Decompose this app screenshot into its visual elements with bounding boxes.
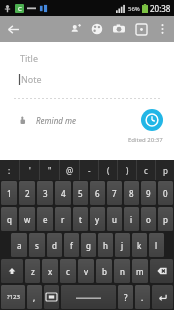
staticText: 9 xyxy=(146,188,151,199)
button[interactable]: 7 xyxy=(107,181,122,205)
button[interactable]: 6 xyxy=(90,181,105,205)
button[interactable]: " xyxy=(40,160,59,180)
staticText: C xyxy=(18,5,22,13)
button[interactable]: s xyxy=(29,233,45,257)
staticText: ( xyxy=(107,165,110,176)
button[interactable]: 0 xyxy=(158,181,173,205)
staticText: f xyxy=(70,240,73,251)
staticText: . xyxy=(141,292,144,303)
staticText: d xyxy=(52,240,57,251)
button[interactable]: w xyxy=(19,207,35,231)
staticText: 5 xyxy=(78,188,83,199)
staticText: @ xyxy=(66,165,74,176)
button[interactable]: q xyxy=(1,207,17,231)
button[interactable]: j xyxy=(115,233,130,257)
button[interactable]: 1 xyxy=(1,181,17,205)
button[interactable]: 8 xyxy=(124,181,139,205)
button[interactable]: - xyxy=(80,160,98,180)
button[interactable]: ?123 xyxy=(1,285,25,309)
button[interactable]: @ xyxy=(60,160,79,180)
button[interactable]: Set reminder time xyxy=(141,109,163,131)
button[interactable]: o xyxy=(141,207,156,231)
button[interactable]: Backspace xyxy=(150,259,173,283)
button[interactable]: ' xyxy=(20,160,39,180)
button[interactable]: b xyxy=(96,259,112,283)
button[interactable]: f xyxy=(64,233,79,257)
button[interactable]: t xyxy=(73,207,88,231)
staticText: b xyxy=(102,266,107,277)
staticText: 56% xyxy=(128,5,140,13)
button[interactable]: Color palette xyxy=(86,18,108,40)
staticText: a xyxy=(17,240,22,251)
button[interactable]: Title xyxy=(20,52,174,64)
button[interactable]: a xyxy=(11,233,27,257)
button[interactable]: i xyxy=(124,207,139,231)
staticText: h xyxy=(103,240,108,251)
button[interactable]: l xyxy=(149,233,164,257)
button[interactable]: n xyxy=(114,259,130,283)
staticText: c xyxy=(66,266,70,277)
staticText: m xyxy=(136,266,144,277)
button[interactable]: c xyxy=(137,160,155,180)
button[interactable]: r xyxy=(55,207,71,231)
staticText: v xyxy=(84,266,89,277)
staticText: n xyxy=(120,266,125,277)
button[interactable]: 9 xyxy=(141,181,156,205)
staticText: Remind me xyxy=(36,115,76,126)
button[interactable]: : xyxy=(0,160,19,180)
button[interactable]: u xyxy=(107,207,122,231)
staticText: x xyxy=(48,266,53,277)
staticText: 1 xyxy=(7,188,12,199)
staticText: ' xyxy=(29,165,31,176)
staticText: t xyxy=(79,214,82,225)
button[interactable]: x xyxy=(42,259,58,283)
staticText: ? xyxy=(124,292,128,303)
button[interactable]: 3 xyxy=(37,181,53,205)
button[interactable]: 5 xyxy=(73,181,88,205)
staticText: p xyxy=(163,165,168,176)
staticText: g xyxy=(86,240,91,251)
button[interactable]: ? xyxy=(118,285,133,309)
button[interactable]: h xyxy=(98,233,113,257)
button[interactable]: ( xyxy=(99,160,117,180)
button[interactable]: p xyxy=(156,160,174,180)
button[interactable]: , xyxy=(27,285,42,309)
button[interactable]: p xyxy=(158,207,173,231)
button[interactable]: Add person xyxy=(64,18,86,40)
staticText: k xyxy=(137,240,142,251)
button[interactable]: Back xyxy=(0,16,26,42)
button[interactable]: Archive xyxy=(130,18,152,40)
button[interactable]: Shift xyxy=(1,259,23,283)
button[interactable]: 4 xyxy=(55,181,71,205)
button[interactable]: m xyxy=(132,259,148,283)
button[interactable]: c xyxy=(60,259,76,283)
button[interactable]: k xyxy=(132,233,147,257)
staticText: ?123 xyxy=(7,293,20,301)
button[interactable]: ) xyxy=(118,160,136,180)
staticText: r xyxy=(61,214,65,225)
button[interactable]: . xyxy=(135,285,150,309)
button[interactable]: 2 xyxy=(19,181,35,205)
button[interactable]: y xyxy=(90,207,105,231)
staticText: 7 xyxy=(112,188,117,199)
button[interactable]: z xyxy=(25,259,40,283)
button[interactable]: e xyxy=(37,207,53,231)
staticText: : xyxy=(8,165,11,176)
button[interactable]: d xyxy=(47,233,62,257)
button[interactable]: Remind me xyxy=(18,115,76,126)
button[interactable]: Space xyxy=(61,285,116,309)
staticText: i xyxy=(130,214,133,225)
button[interactable]: Camera xyxy=(108,18,130,40)
button[interactable]: Enter xyxy=(152,285,173,309)
button[interactable]: g xyxy=(81,233,96,257)
button[interactable]: Note xyxy=(19,73,174,85)
button[interactable]: Switch keyboard xyxy=(44,285,59,309)
staticText: , xyxy=(33,292,36,303)
staticText: 6 xyxy=(95,188,100,199)
staticText: y xyxy=(95,214,100,225)
staticText: z xyxy=(31,266,35,277)
staticText: Title xyxy=(20,52,38,64)
staticText: u xyxy=(112,214,117,225)
button[interactable]: More options xyxy=(152,19,172,39)
button[interactable]: v xyxy=(78,259,94,283)
